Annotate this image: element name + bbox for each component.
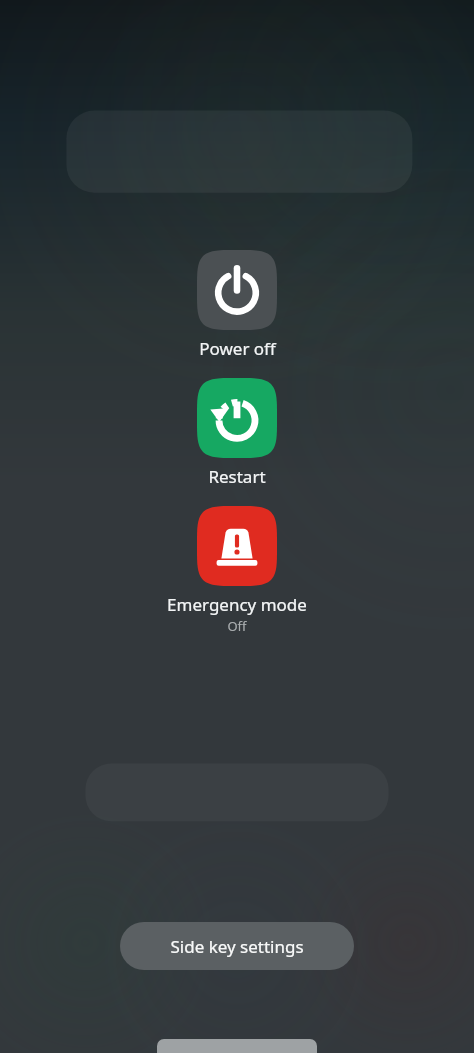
staticText: Side key settings: [170, 935, 304, 958]
staticText: Off: [227, 617, 247, 635]
button[interactable]: Restart: [173, 376, 301, 490]
staticText: Restart: [208, 465, 266, 488]
button[interactable]: Side key settings: [120, 922, 354, 970]
button[interactable]: Power off: [173, 248, 301, 362]
staticText: Emergency mode: [167, 593, 307, 616]
button[interactable]: Emergency mode: [143, 504, 331, 637]
staticText: Power off: [199, 337, 276, 360]
